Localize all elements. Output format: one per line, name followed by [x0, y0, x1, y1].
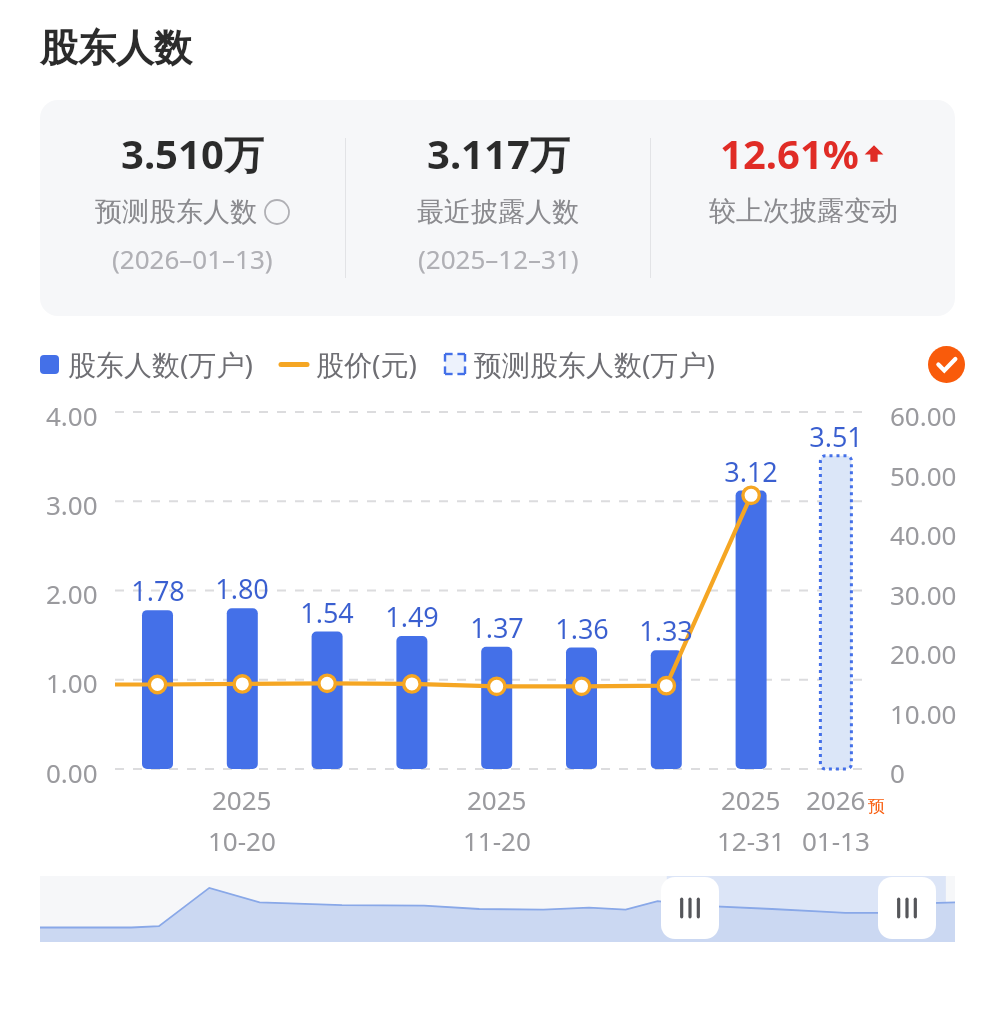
button[interactable]: 预测股东人数(万户)	[445, 345, 715, 383]
staticText: 最近披露人数	[417, 195, 579, 229]
staticText: 3.510万	[121, 126, 264, 181]
staticText: 0.00	[46, 755, 98, 790]
staticText: 较上次披露变动	[709, 194, 898, 228]
button[interactable]: 12.61%	[651, 100, 955, 316]
staticText: 0	[890, 755, 905, 790]
staticText: 1.80	[213, 570, 271, 607]
staticText: 1.78	[129, 572, 187, 609]
staticText: 预测股东人数(万户)	[474, 345, 715, 383]
staticText: 股价(元)	[316, 345, 417, 383]
staticText: 12.61%	[720, 126, 859, 180]
staticText: 60.00	[890, 398, 957, 433]
staticText: 股东人数(万户)	[68, 345, 253, 383]
staticText: 1.00	[46, 665, 98, 700]
button[interactable]: 3.510万	[40, 100, 345, 316]
staticText: 30.00	[890, 577, 957, 612]
button[interactable]: Left range handle	[661, 877, 719, 939]
staticText: 01-13	[802, 823, 870, 858]
staticText: 10.00	[890, 696, 957, 731]
button[interactable]: 3.117万	[346, 100, 650, 316]
staticText: 3.51	[807, 418, 865, 455]
button[interactable]: Right range handle	[878, 877, 936, 939]
staticText: 1.37	[468, 609, 526, 646]
staticText: 股东人数	[40, 24, 192, 72]
staticText: 20.00	[890, 636, 957, 671]
staticText: 11-20	[463, 823, 531, 858]
staticText: 40.00	[890, 517, 957, 552]
button[interactable]: 股价(元)	[281, 345, 417, 383]
staticText: 2.00	[46, 576, 98, 611]
staticText: (2025–12–31)	[418, 241, 579, 276]
staticText: 1.33	[637, 612, 695, 649]
staticText: 3.00	[46, 487, 98, 522]
staticText: 预	[868, 796, 885, 817]
staticText: 2026	[806, 782, 866, 817]
staticText: 4.00	[46, 398, 98, 433]
staticText: 1.49	[383, 598, 441, 635]
staticText: 预测股东人数	[95, 195, 257, 229]
staticText: 2025	[467, 782, 527, 817]
staticText: 3.117万	[427, 126, 570, 181]
staticText: 12-31	[717, 823, 785, 858]
staticText: 3.12	[722, 453, 780, 490]
staticText: 1.54	[298, 594, 356, 631]
button[interactable]: 股东人数(万户)	[40, 345, 253, 383]
staticText: 10-20	[208, 823, 276, 858]
staticText: (2026–01–13)	[112, 241, 273, 276]
button[interactable]: Confirm selection	[928, 346, 965, 383]
staticText: 2025	[721, 782, 781, 817]
staticText: 50.00	[890, 458, 957, 493]
staticText: 2025	[212, 782, 272, 817]
staticText: 1.36	[553, 610, 611, 647]
